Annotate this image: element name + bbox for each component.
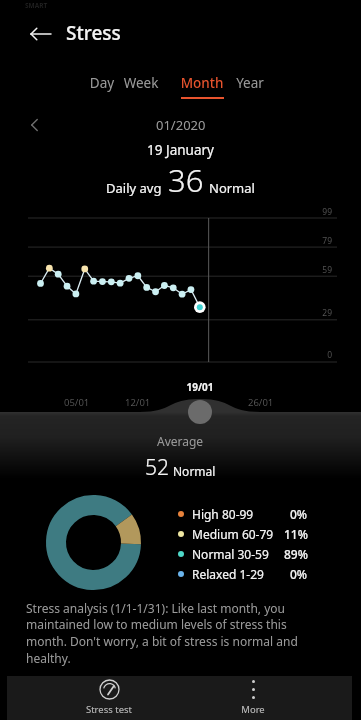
staticText: Normal — [173, 463, 216, 479]
staticText: 79 — [320, 235, 332, 247]
button[interactable]: Drag handle — [188, 400, 212, 424]
staticText: 59 — [320, 264, 332, 276]
staticText: 0 — [320, 349, 332, 361]
button[interactable]: Month — [178, 74, 226, 104]
button[interactable]: Stress test — [68, 676, 150, 720]
staticText: Stress analysis (1/1-1/31): Like last mo… — [26, 600, 317, 667]
staticText: Relaxed 1-29 — [192, 566, 264, 582]
staticText: 26/01 — [248, 396, 274, 409]
button[interactable]: More — [212, 676, 294, 720]
staticText: 11% — [284, 526, 308, 542]
button[interactable]: Week — [117, 74, 165, 104]
button[interactable]: Relaxed 1-29 — [178, 564, 308, 584]
staticText: 0% — [290, 506, 308, 522]
button[interactable]: Normal 30-59 — [178, 544, 308, 564]
staticText: 19 January — [147, 141, 214, 159]
staticText: Medium 60-79 — [192, 526, 274, 542]
button[interactable]: Back — [24, 17, 58, 51]
staticText: Year — [228, 74, 272, 92]
staticText: Stress test — [68, 703, 150, 716]
staticText: 89% — [284, 546, 308, 562]
button[interactable]: High 80-99 — [178, 504, 308, 524]
staticText: 05/01 — [64, 396, 90, 409]
staticText: More — [212, 703, 294, 716]
staticText: Week — [117, 74, 165, 92]
staticText: Normal — [209, 179, 255, 197]
staticText: 99 — [320, 206, 332, 218]
staticText: 12/01 — [125, 396, 151, 409]
button[interactable]: Year — [228, 74, 272, 104]
staticText: Average — [157, 433, 204, 449]
staticText: 36 — [168, 159, 204, 201]
staticText: 29 — [320, 307, 332, 319]
staticText: Month — [178, 74, 226, 92]
staticText: 19/01 — [186, 380, 214, 394]
staticText: SMART — [25, 1, 48, 10]
button[interactable]: Day — [82, 74, 122, 104]
staticText: Normal 30-59 — [192, 546, 269, 562]
staticText: Day — [82, 74, 122, 92]
staticText: 52 — [145, 453, 169, 482]
staticText: 0% — [290, 566, 308, 582]
staticText: Stress — [66, 20, 121, 46]
button[interactable]: Medium 60-79 — [178, 524, 308, 544]
staticText: Daily avg — [106, 179, 162, 197]
staticText: High 80-99 — [192, 506, 254, 522]
button[interactable]: Previous period — [22, 112, 48, 138]
staticText: 01/2020 — [156, 116, 206, 134]
